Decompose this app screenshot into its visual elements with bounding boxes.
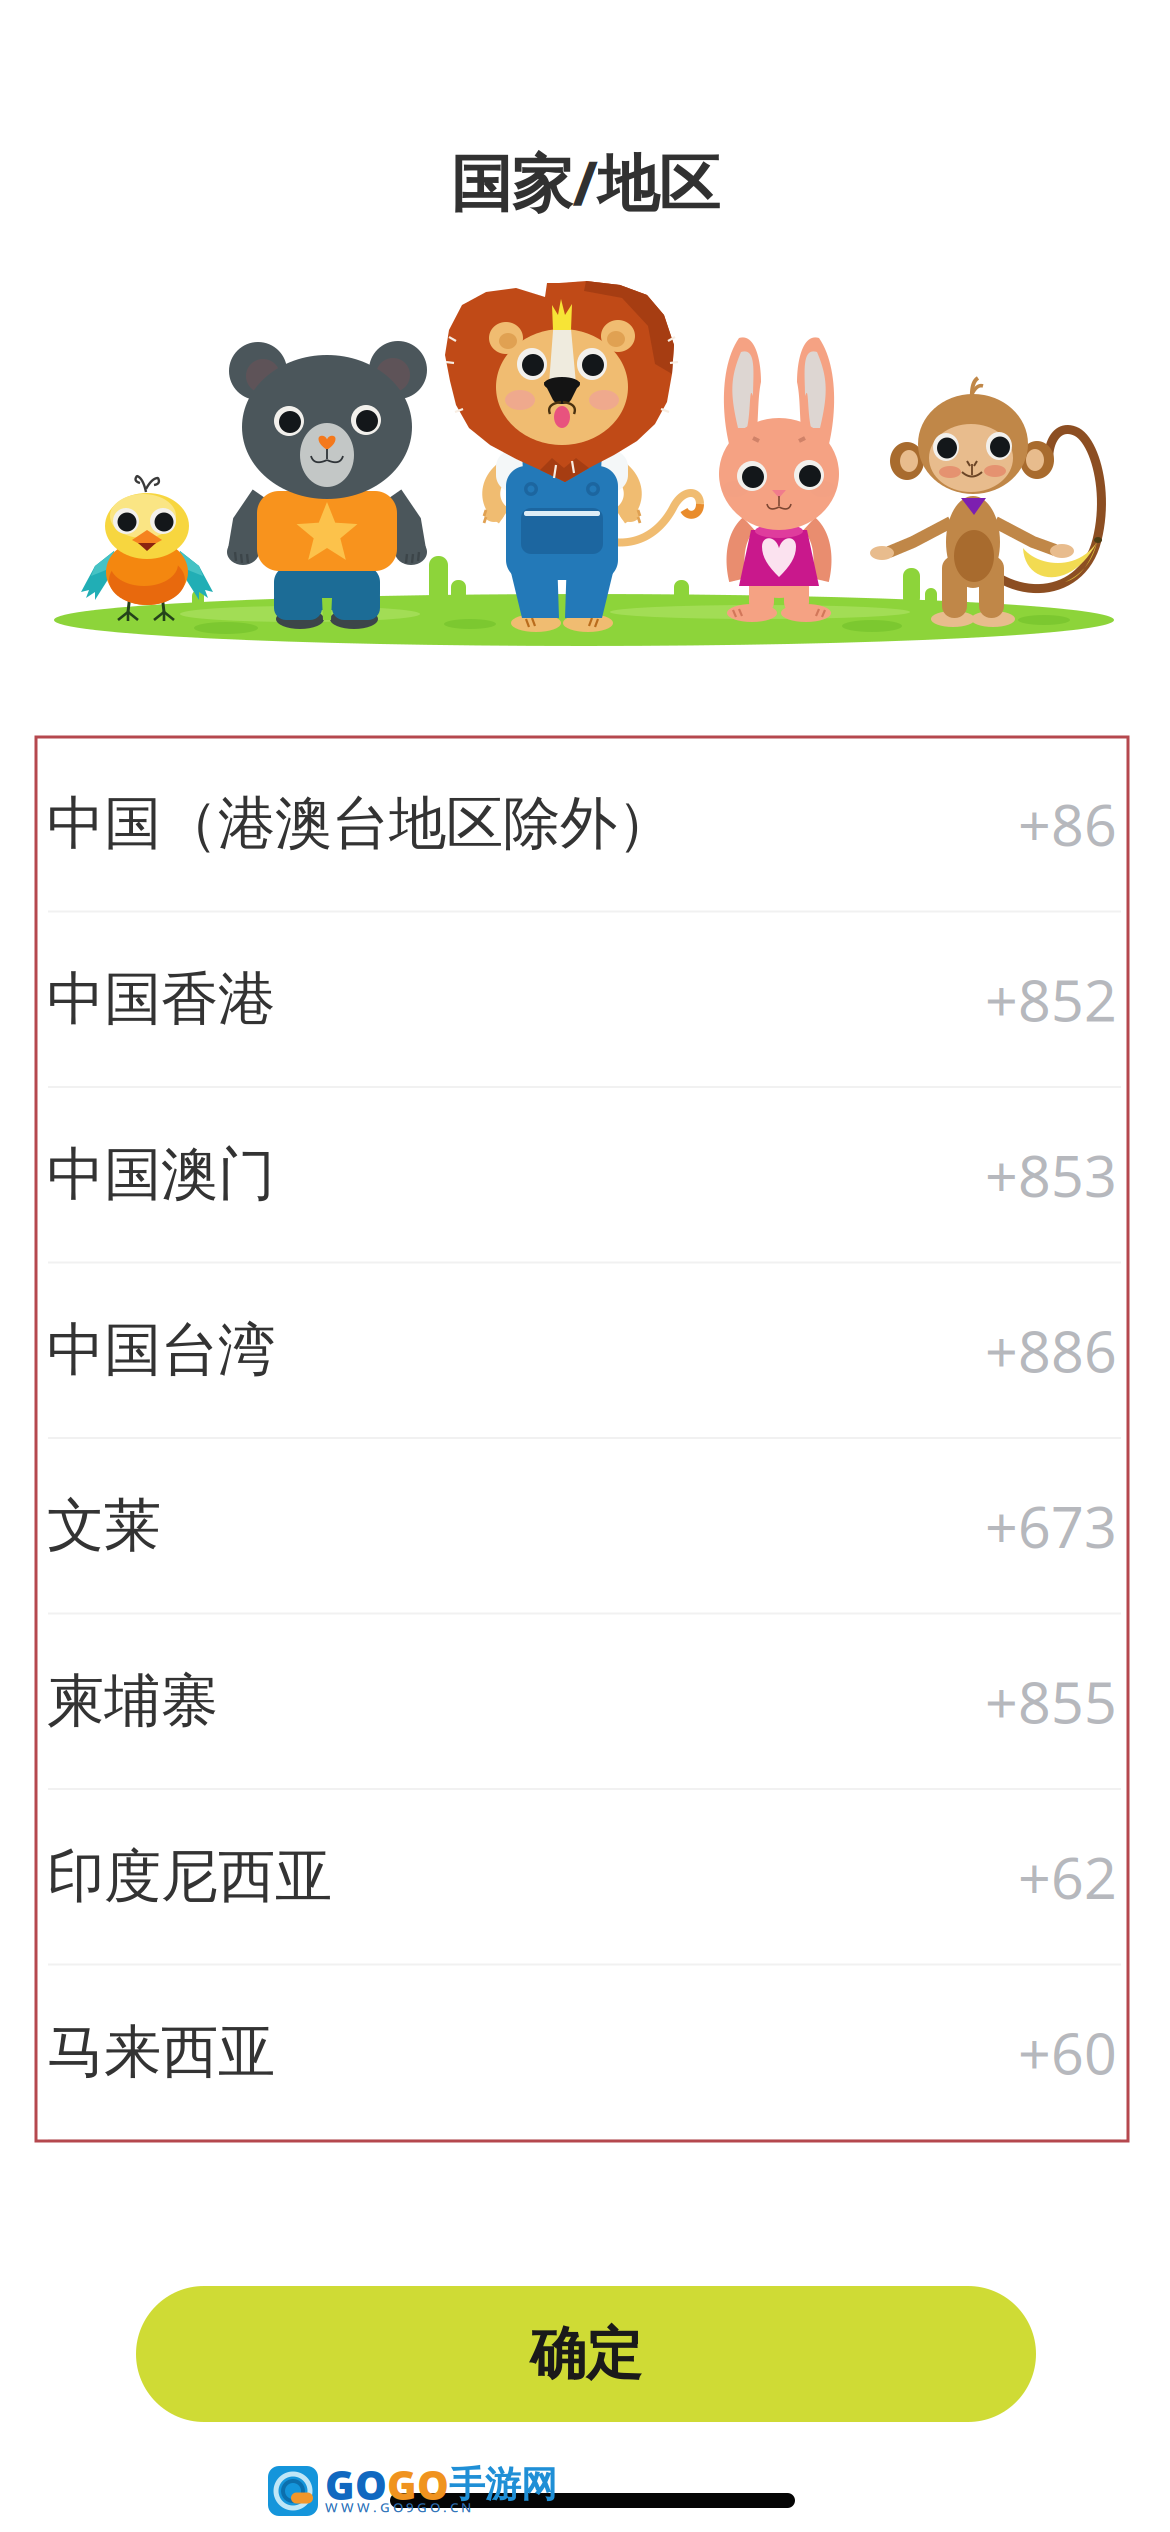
staticText: 中国（港澳台地区除外）: [47, 788, 674, 859]
button[interactable]: 确定: [136, 2286, 1036, 2422]
staticText: 印度尼西亚: [47, 1841, 332, 1912]
staticText: 马来西亚: [47, 2017, 275, 2087]
staticText: GO: [387, 2458, 449, 2511]
staticText: +853: [985, 1137, 1117, 1213]
button[interactable]: 马来西亚: [36, 1965, 1128, 2139]
staticText: 确定: [530, 2320, 642, 2388]
staticText: +673: [985, 1488, 1117, 1564]
button[interactable]: 中国香港: [36, 912, 1128, 1086]
staticText: +62: [1018, 1839, 1117, 1915]
staticText: +86: [1018, 786, 1117, 862]
staticText: +60: [1018, 2014, 1117, 2090]
button[interactable]: 柬埔寨: [36, 1614, 1128, 1788]
staticText: 手游网: [449, 2462, 557, 2507]
staticText: GO: [325, 2458, 387, 2511]
staticText: 中国台湾: [47, 1315, 275, 1385]
button[interactable]: 中国澳门: [36, 1088, 1128, 1261]
staticText: +852: [985, 961, 1117, 1037]
staticText: +855: [985, 1663, 1117, 1739]
button[interactable]: 印度尼西亚: [36, 1790, 1128, 1963]
staticText: 文莱: [47, 1490, 161, 1561]
staticText: 国家/地区: [450, 141, 719, 223]
staticText: 中国香港: [47, 964, 275, 1034]
staticText: 柬埔寨: [47, 1666, 218, 1736]
staticText: W W W . G O 9 G O . C N: [325, 2498, 471, 2516]
button[interactable]: 中国（港澳台地区除外）: [36, 737, 1128, 910]
button[interactable]: 中国台湾: [36, 1263, 1128, 1437]
staticText: 中国澳门: [47, 1139, 275, 1210]
staticText: +886: [985, 1312, 1117, 1388]
button[interactable]: 文莱: [36, 1439, 1128, 1612]
